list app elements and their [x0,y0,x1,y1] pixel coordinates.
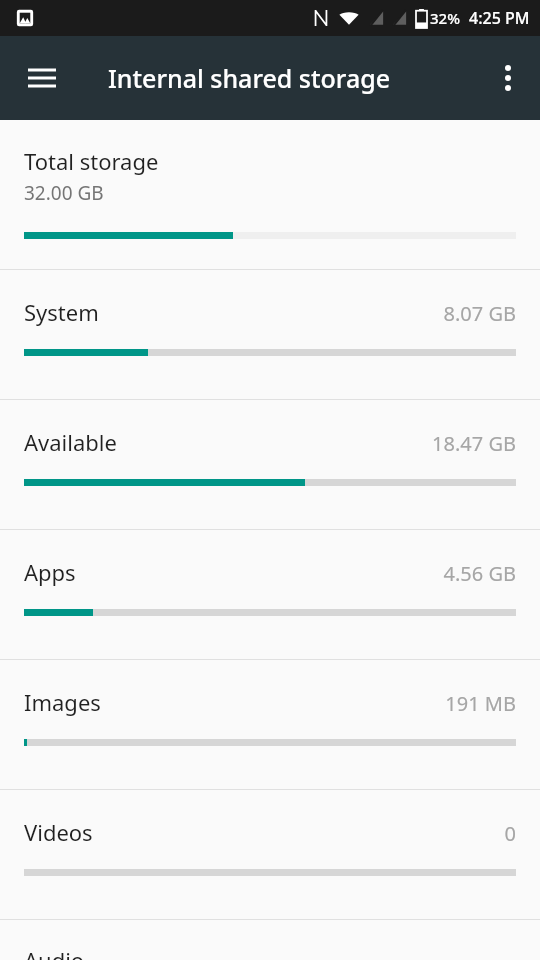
button[interactable]: Open navigation menu [14,50,70,106]
staticText: 8.07 GB [443,300,516,327]
button[interactable]: Apps [0,530,540,659]
staticText: 0 [504,820,516,847]
staticText: 4.56 GB [443,560,516,587]
staticText: Internal shared storage [108,61,391,95]
staticText: Available [24,427,117,457]
staticText: Videos [24,817,93,847]
staticText: Images [24,687,101,717]
button[interactable]: Images [0,660,540,789]
button[interactable]: System [0,270,540,399]
button[interactable]: Available [0,400,540,529]
button[interactable]: Videos [0,790,540,919]
staticText: 18.47 GB [432,430,516,457]
staticText: 4:25 PM [469,7,530,29]
staticText: 191 MB [445,690,516,717]
staticText: 32% [430,8,460,28]
staticText: 32.00 GB [24,180,104,206]
button[interactable]: Audio [0,920,540,957]
staticText: Audio [24,945,85,960]
button[interactable]: More options [480,50,536,106]
staticText: System [24,297,99,327]
staticText: Total storage [24,146,159,176]
staticText: Apps [24,557,76,587]
button[interactable]: Total storage [0,120,540,269]
